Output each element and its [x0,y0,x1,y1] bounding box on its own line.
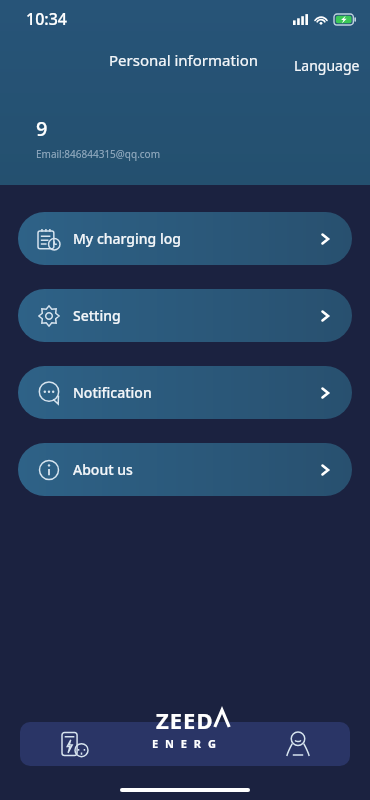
staticText: Email:846844315@qq.com [36,147,161,161]
button[interactable]: Charging [20,722,185,766]
staticText: About us [73,460,133,479]
staticText: E N E R G [152,736,218,751]
button[interactable]: Language [284,53,370,78]
staticText: 10:34 [26,8,67,30]
staticText: Language [294,56,360,75]
staticText: 9 [36,115,48,142]
button[interactable]: About us [18,443,352,496]
staticText: Notification [73,383,152,402]
staticText: Personal information [109,50,259,70]
staticText: My charging log [73,229,181,248]
button[interactable]: My charging log [18,212,352,265]
button[interactable]: Notification [18,366,352,419]
button[interactable]: Profile [185,722,350,766]
staticText: Setting [73,306,121,325]
staticText: ZEED [156,705,214,735]
button[interactable]: Setting [18,289,352,342]
